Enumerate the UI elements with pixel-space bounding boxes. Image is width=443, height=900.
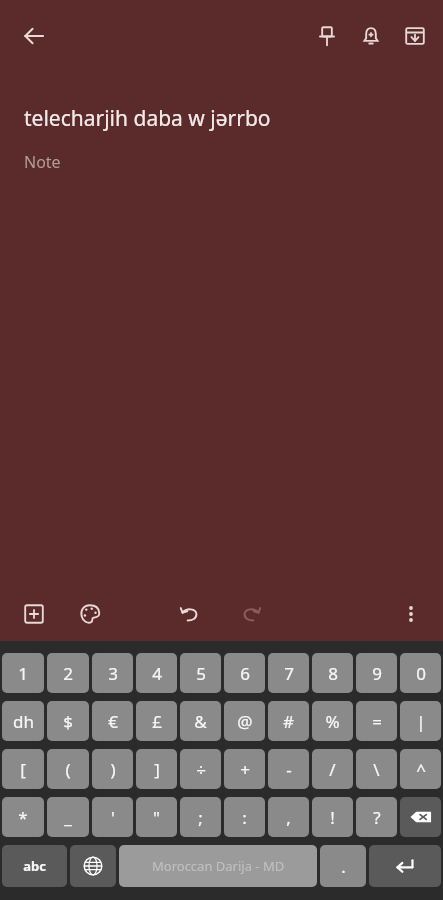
button[interactable]: ÷ xyxy=(180,749,221,789)
staticText: ] xyxy=(154,758,160,781)
staticText: / xyxy=(329,758,336,781)
staticText: , xyxy=(286,806,291,829)
button[interactable]: # xyxy=(268,701,309,741)
staticText: ! xyxy=(330,806,335,829)
staticText: $ xyxy=(63,710,73,733)
staticText: % xyxy=(325,710,340,733)
button[interactable]: ? xyxy=(356,797,397,837)
staticText: = xyxy=(372,710,382,733)
staticText: ÷ xyxy=(196,758,206,781)
button[interactable]: ! xyxy=(312,797,353,837)
button[interactable]: % xyxy=(312,701,353,741)
button[interactable]: ) xyxy=(92,749,133,789)
staticText: Note xyxy=(24,151,61,173)
staticText: | xyxy=(416,710,426,733)
button[interactable]: * xyxy=(2,797,44,837)
button[interactable]: & xyxy=(180,701,221,741)
staticText: + xyxy=(240,758,250,781)
button[interactable]: : xyxy=(224,797,265,837)
staticText: 5 xyxy=(196,662,206,685)
staticText: @ xyxy=(237,710,253,733)
staticText: [ xyxy=(20,758,26,781)
staticText: ' xyxy=(111,806,115,829)
button[interactable]: / xyxy=(312,749,353,789)
button[interactable]: Undo xyxy=(167,592,211,636)
button[interactable]: 5 xyxy=(180,653,221,693)
button[interactable]: Add xyxy=(12,592,56,636)
button[interactable]: [ xyxy=(2,749,44,789)
button[interactable]: \ xyxy=(356,749,397,789)
button[interactable]: ( xyxy=(47,749,89,789)
staticText: 8 xyxy=(328,662,338,685)
staticText: abc xyxy=(23,857,46,875)
staticText: * xyxy=(18,806,28,829)
button[interactable]: ' xyxy=(92,797,133,837)
button[interactable]: Pin xyxy=(305,14,349,58)
button[interactable]: . xyxy=(320,845,366,887)
staticText: 3 xyxy=(108,662,118,685)
button[interactable]: | xyxy=(400,701,441,741)
button[interactable]: 1 xyxy=(2,653,44,693)
staticText: dh xyxy=(13,710,34,733)
button[interactable]: 6 xyxy=(224,653,265,693)
staticText: Moroccan Darija - MD xyxy=(152,857,285,875)
button[interactable]: More options xyxy=(391,594,431,634)
staticText: ? xyxy=(373,806,381,829)
staticText: \ xyxy=(373,758,380,781)
staticText: 1 xyxy=(18,662,28,685)
staticText: £ xyxy=(152,710,162,733)
staticText: : xyxy=(242,806,247,829)
staticText: 2 xyxy=(63,662,73,685)
staticText: # xyxy=(283,710,294,733)
staticText: " xyxy=(153,806,160,829)
button[interactable]: 3 xyxy=(92,653,133,693)
button[interactable]: Reminder xyxy=(349,14,393,58)
staticText: € xyxy=(108,710,118,733)
button[interactable]: " xyxy=(136,797,177,837)
staticText: ( xyxy=(65,758,71,781)
staticText: 4 xyxy=(152,662,162,685)
button[interactable]: _ xyxy=(47,797,89,837)
staticText: ; xyxy=(198,806,203,829)
staticText: ^ xyxy=(416,758,426,781)
button[interactable]: 4 xyxy=(136,653,177,693)
button[interactable]: Backspace xyxy=(400,797,441,837)
button[interactable]: abc xyxy=(2,845,67,887)
staticText: telecharjih daba w jərrbo xyxy=(24,104,271,133)
staticText: 0 xyxy=(416,662,426,685)
button[interactable]: , xyxy=(268,797,309,837)
staticText: _ xyxy=(64,806,72,829)
staticText: ) xyxy=(110,758,116,781)
button[interactable]: Moroccan Darija - MD xyxy=(119,845,317,887)
staticText: - xyxy=(286,758,292,781)
button[interactable]: £ xyxy=(136,701,177,741)
button[interactable]: Back xyxy=(10,12,58,60)
staticText: 9 xyxy=(372,662,382,685)
button[interactable]: Enter xyxy=(369,845,441,887)
button[interactable]: 2 xyxy=(47,653,89,693)
button[interactable]: 9 xyxy=(356,653,397,693)
button[interactable]: 8 xyxy=(312,653,353,693)
button[interactable]: @ xyxy=(224,701,265,741)
button[interactable]: + xyxy=(224,749,265,789)
button[interactable]: 0 xyxy=(400,653,441,693)
button[interactable]: = xyxy=(356,701,397,741)
button[interactable]: - xyxy=(268,749,309,789)
button[interactable]: ; xyxy=(180,797,221,837)
button[interactable]: ] xyxy=(136,749,177,789)
staticText: 7 xyxy=(284,662,294,685)
button[interactable]: $ xyxy=(47,701,89,741)
button[interactable]: ^ xyxy=(400,749,441,789)
button[interactable]: Change keyboard language xyxy=(70,845,116,887)
staticText: & xyxy=(194,710,207,733)
button[interactable]: Color palette xyxy=(68,592,112,636)
button[interactable]: € xyxy=(92,701,133,741)
button[interactable]: dh xyxy=(2,701,44,741)
staticText: 6 xyxy=(240,662,250,685)
button[interactable]: Archive xyxy=(393,14,437,58)
staticText: . xyxy=(341,855,346,878)
button[interactable]: Redo xyxy=(229,592,273,636)
button[interactable]: 7 xyxy=(268,653,309,693)
